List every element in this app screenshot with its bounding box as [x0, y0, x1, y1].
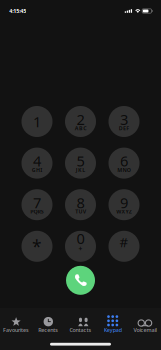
staticText: 6 [120, 151, 128, 171]
button[interactable]: Keypad [97, 308, 129, 336]
button[interactable]: 5 [65, 148, 96, 179]
staticText: WXYZ [116, 208, 132, 215]
staticText: 2 [76, 110, 84, 129]
staticText: Keypad [104, 326, 122, 333]
staticText: 7 [33, 193, 41, 212]
staticText: 4:15:45 [9, 7, 26, 15]
button[interactable]: 9 [108, 189, 139, 220]
staticText: MNO [117, 166, 131, 173]
button[interactable]: 8 [65, 189, 96, 220]
staticText: 5 [76, 151, 84, 171]
staticText: Recents [38, 326, 58, 333]
button[interactable]: Recents [32, 308, 64, 336]
button[interactable]: 1 [21, 106, 52, 137]
staticText: DEF [119, 125, 129, 132]
staticText: JKL [76, 166, 85, 173]
button[interactable]: 7 [21, 189, 52, 220]
button[interactable]: # [108, 231, 139, 262]
staticText: ABC [75, 125, 86, 132]
staticText: * [32, 235, 42, 258]
staticText: GHI [32, 166, 42, 173]
staticText: TUV [75, 208, 86, 215]
staticText: + [78, 244, 82, 253]
staticText: 4 [33, 151, 41, 171]
staticText: 8 [76, 193, 84, 212]
button[interactable]: 4 [21, 148, 52, 179]
staticText: PQRS [30, 208, 44, 215]
staticText: 0 [76, 229, 84, 248]
staticText: 1 [33, 112, 41, 131]
staticText: Voicemail [133, 326, 156, 333]
button[interactable]: 3 [108, 106, 139, 137]
button[interactable]: * [21, 231, 52, 262]
button[interactable]: Favourites [0, 308, 32, 336]
button[interactable]: Call [66, 266, 95, 295]
staticText: # [119, 233, 128, 251]
button[interactable]: Voicemail [129, 308, 161, 336]
button[interactable]: 6 [108, 148, 139, 179]
staticText: Favourites [3, 326, 29, 333]
staticText: 9 [120, 193, 128, 212]
staticText: Contacts [69, 326, 91, 333]
button[interactable]: 0 [65, 231, 96, 262]
button[interactable]: 2 [65, 106, 96, 137]
staticText: 3 [120, 110, 128, 129]
button[interactable]: Contacts [64, 308, 97, 336]
